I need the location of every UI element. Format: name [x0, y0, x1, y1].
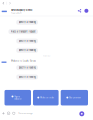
staticText: Powered by AI: [11, 12, 21, 14]
button[interactable]: Make an order: [33, 90, 59, 105]
staticText: Welcome to Loyalty Service: [11, 60, 36, 62]
staticText: Buy premium: [69, 97, 81, 99]
button[interactable]: Emoji: [7, 112, 10, 115]
staticText: Specify a reading: [19, 49, 36, 52]
button[interactable]: Figures indicators: [4, 90, 31, 105]
staticText: Figures indicators: [14, 95, 22, 100]
button[interactable]: Back: [1, 1, 5, 5]
staticText: Enter a message: [18, 112, 32, 114]
staticText: ServiceLoyalty Demo: [11, 9, 32, 12]
button[interactable]: Account: [84, 9, 88, 13]
button[interactable]: Share: [77, 9, 82, 13]
button[interactable]: Buy premium: [61, 90, 88, 105]
staticText: Specify a reading: [19, 40, 36, 42]
button[interactable]: Send message: [79, 111, 84, 116]
staticText: Specify a reading: [19, 66, 36, 69]
staticText: Yesterday: [42, 55, 50, 57]
staticText: Place a transport request: [11, 30, 36, 33]
staticText: Specify a reading: [19, 21, 36, 24]
button[interactable]: Add attachment: [2, 112, 5, 115]
staticText: Specify a reading: [19, 76, 36, 78]
staticText: Make an order: [40, 97, 54, 99]
button[interactable]: Privacy: [12, 112, 15, 115]
button[interactable]: Forward: [8, 1, 12, 5]
